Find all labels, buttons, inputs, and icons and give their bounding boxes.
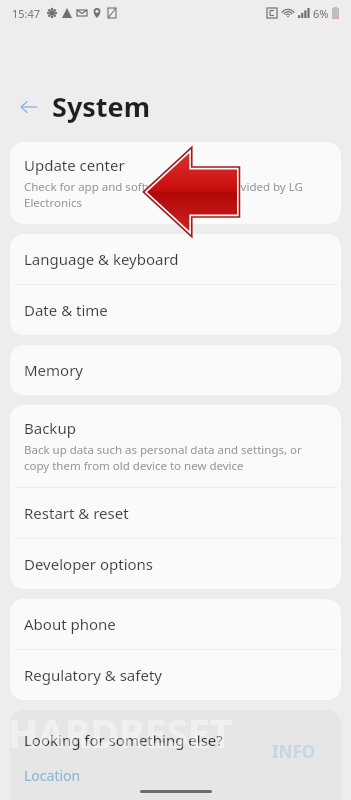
button[interactable]: Back bbox=[16, 94, 42, 120]
staticText: Check for app and software updates provi… bbox=[24, 179, 327, 210]
button[interactable]: Memory bbox=[10, 345, 341, 395]
button[interactable]: Regulatory & safety bbox=[10, 650, 341, 700]
staticText: Date & time bbox=[24, 300, 108, 320]
staticText: Update center bbox=[24, 155, 125, 175]
staticText: Regulatory & safety bbox=[24, 665, 162, 685]
staticText: Looking for something else? bbox=[24, 730, 223, 750]
staticText: Location bbox=[24, 766, 81, 785]
staticText: Developer options bbox=[24, 554, 154, 574]
staticText: 15:47 bbox=[12, 6, 41, 21]
button[interactable]: Restart & reset bbox=[10, 488, 341, 538]
button[interactable]: Location bbox=[24, 764, 81, 787]
staticText: Backup bbox=[24, 418, 76, 438]
button[interactable]: About phone bbox=[10, 599, 341, 649]
staticText: Memory bbox=[24, 360, 84, 380]
staticText: Back up data such as personal data and s… bbox=[24, 442, 327, 473]
button[interactable]: Date & time bbox=[10, 285, 341, 335]
staticText: INFO bbox=[272, 740, 316, 763]
button[interactable]: Backup bbox=[10, 405, 341, 487]
staticText: Language & keyboard bbox=[24, 249, 179, 269]
staticText: System bbox=[52, 88, 151, 125]
staticText: 6% bbox=[313, 6, 329, 21]
button[interactable]: Language & keyboard bbox=[10, 234, 341, 284]
staticText: Restart & reset bbox=[24, 503, 129, 523]
button[interactable]: Developer options bbox=[10, 539, 341, 589]
other: Annotation arrow pointing to Update cent… bbox=[147, 153, 237, 231]
staticText: About phone bbox=[24, 614, 116, 634]
button[interactable]: Update center bbox=[10, 142, 341, 224]
staticText: HARDRESET bbox=[8, 706, 233, 759]
